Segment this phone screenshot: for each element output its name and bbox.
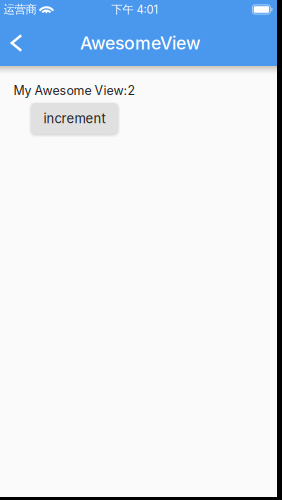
staticText: 下午 4:01 (111, 2, 158, 16)
button[interactable]: Back (0, 20, 33, 66)
staticText: My Awesome View:2 (13, 83, 135, 98)
button[interactable]: increment (31, 103, 118, 134)
staticText: AwesomeView (80, 32, 201, 54)
staticText: increment (43, 111, 105, 126)
staticText: 运营商 (3, 2, 36, 17)
